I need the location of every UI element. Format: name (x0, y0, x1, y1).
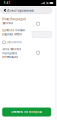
button[interactable]: Ответить на вопросы (2, 107, 51, 116)
staticText: Брать ли письма (2, 28, 24, 32)
staticText: занятий (2, 21, 13, 25)
staticText: Ответить на вопросы (11, 110, 42, 114)
button[interactable]: Анкетирование (0, 7, 52, 14)
staticText: радиуса, метра (2, 32, 21, 36)
staticText: Типы занятий (2, 47, 21, 51)
button[interactable]: Класс биорядов (0, 15, 56, 26)
button[interactable]: Брать ли письма (0, 26, 56, 39)
staticText: Анкетирование (7, 8, 34, 13)
staticText: Запомнить (6, 40, 21, 44)
staticText: Класс биорядов (2, 17, 26, 21)
staticText: 9:41 (4, 1, 11, 5)
staticText: городской, (2, 51, 18, 55)
button[interactable]: Типы занятий (0, 45, 56, 59)
staticText: интеграция (2, 55, 18, 59)
button[interactable]: Запомнить (0, 39, 56, 45)
